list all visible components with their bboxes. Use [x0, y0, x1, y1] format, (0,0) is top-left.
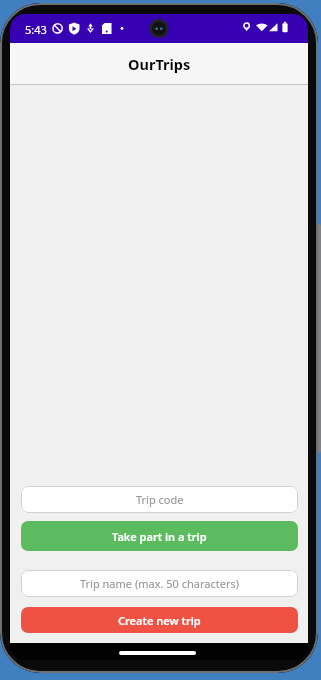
- button[interactable]: Take part in a trip: [21, 521, 298, 551]
- button[interactable]: Trip name (max. 50 characters): [21, 570, 298, 597]
- staticText: Trip code: [136, 492, 184, 507]
- button[interactable]: Trip code: [21, 486, 298, 513]
- staticText: Create new trip: [118, 613, 201, 628]
- staticText: OurTrips: [128, 54, 191, 74]
- staticText: Trip name (max. 50 characters): [80, 576, 240, 591]
- button[interactable]: Create new trip: [21, 607, 298, 633]
- staticText: 5:43: [25, 22, 47, 37]
- staticText: Take part in a trip: [112, 529, 207, 544]
